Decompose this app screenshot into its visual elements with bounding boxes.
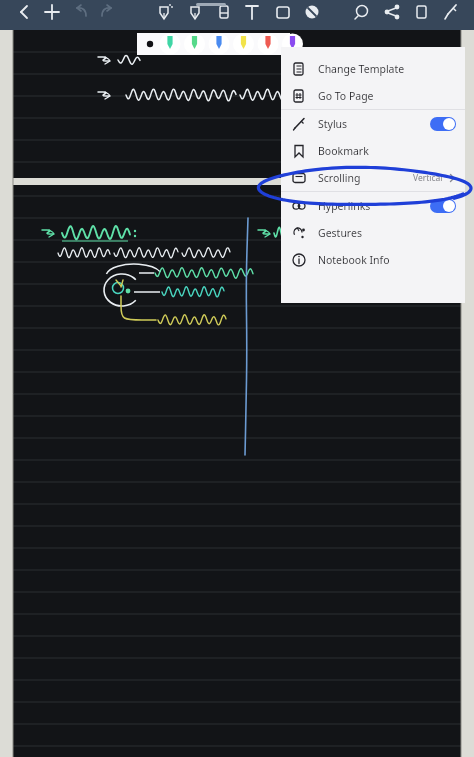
staticText: Stylus: [318, 117, 348, 131]
button[interactable]: Go To Page: [281, 82, 465, 109]
button[interactable]: Stylus: [281, 110, 465, 137]
button[interactable]: Copy: [409, 0, 433, 24]
button[interactable]: Change Template: [281, 55, 465, 82]
button[interactable]: Back: [12, 0, 36, 24]
staticText: Notebook Info: [318, 253, 390, 267]
button[interactable]: Notebook Info: [281, 246, 465, 273]
button[interactable]: Bookmark: [281, 137, 465, 164]
button[interactable]: Lasso: [350, 0, 374, 24]
button[interactable]: Annotate: [438, 0, 462, 24]
button[interactable]: Text: [240, 0, 264, 24]
button[interactable]: Pen: [152, 0, 176, 24]
staticText: Change Template: [318, 62, 405, 76]
button[interactable]: Redo: [96, 0, 120, 24]
button[interactable]: Gestures: [281, 219, 465, 246]
button[interactable]: Scrolling: [281, 164, 465, 191]
staticText: Scrolling: [318, 171, 361, 185]
staticText: Gestures: [318, 226, 362, 240]
button[interactable]: Shape: [271, 0, 295, 24]
button[interactable]: Clear: [300, 0, 324, 24]
button[interactable]: Pen colors: [137, 33, 290, 55]
staticText: Vertical: [413, 172, 443, 184]
button[interactable]: Highlighter: [183, 0, 207, 24]
button[interactable]: Undo: [68, 0, 92, 24]
staticText: Hyperlinks: [318, 199, 371, 213]
staticText: Go To Page: [318, 89, 374, 103]
button[interactable]: Share: [380, 0, 404, 24]
button[interactable]: Add: [40, 0, 64, 24]
button[interactable]: Hyperlinks: [281, 192, 465, 219]
staticText: Bookmark: [318, 144, 369, 158]
button[interactable]: Eraser: [212, 0, 236, 24]
